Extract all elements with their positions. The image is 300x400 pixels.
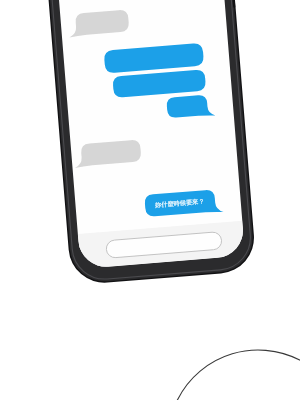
- button[interactable]: Phone mockup showing a chat conversation: [0, 0, 300, 400]
